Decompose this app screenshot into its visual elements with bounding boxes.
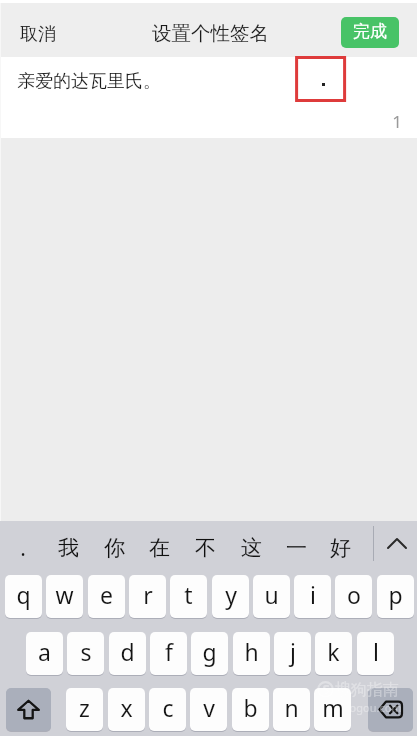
button[interactable]: b xyxy=(232,688,269,731)
staticText: 亲爱的达瓦里氏。 xyxy=(17,70,161,93)
button[interactable]: z xyxy=(66,688,103,731)
button[interactable]: 在 xyxy=(137,526,181,570)
staticText: p xyxy=(388,579,403,610)
button[interactable]: q xyxy=(5,575,42,618)
staticText: t xyxy=(184,579,193,610)
button[interactable]: f xyxy=(150,632,187,675)
staticText: z xyxy=(79,692,90,723)
staticText: i xyxy=(310,579,316,610)
button[interactable]: v xyxy=(190,688,227,731)
button[interactable]: 你 xyxy=(92,526,136,570)
staticText: a xyxy=(38,636,51,667)
staticText: 一 xyxy=(286,535,307,561)
staticText: 这 xyxy=(241,535,262,561)
button[interactable]: t xyxy=(170,575,207,618)
staticText: c xyxy=(162,692,174,723)
staticText: 你 xyxy=(104,535,125,561)
button[interactable]: g xyxy=(191,632,228,675)
button[interactable]: a xyxy=(26,632,63,675)
button[interactable]: 一 xyxy=(274,526,318,570)
staticText: sogou.com xyxy=(344,700,402,715)
staticText: v xyxy=(203,692,215,723)
staticText: n xyxy=(284,692,299,723)
button[interactable]: e xyxy=(88,575,125,618)
staticText: q xyxy=(16,579,31,610)
staticText: . xyxy=(20,534,26,563)
staticText: e xyxy=(100,579,113,610)
staticText: S xyxy=(322,680,330,697)
button[interactable]: 这 xyxy=(229,526,273,570)
button[interactable]: x xyxy=(108,688,145,731)
button[interactable]: Delete xyxy=(368,688,413,731)
button[interactable]: u xyxy=(253,575,290,618)
staticText: f xyxy=(165,636,173,667)
staticText: 我 xyxy=(58,535,79,561)
button[interactable]: Expand candidates xyxy=(375,521,417,569)
staticText: b xyxy=(243,692,258,723)
button[interactable]: y xyxy=(212,575,249,618)
button[interactable]: 完成 xyxy=(341,17,399,48)
button[interactable]: k xyxy=(315,632,352,675)
staticText: o xyxy=(347,579,361,610)
button[interactable]: Shift xyxy=(6,688,51,731)
button[interactable]: n xyxy=(273,688,310,731)
staticText: 设置个性签名 xyxy=(152,21,269,46)
button[interactable]: o xyxy=(335,575,372,618)
staticText: m xyxy=(322,692,344,723)
button[interactable]: 亲爱的达瓦里氏。 xyxy=(0,57,417,138)
button[interactable]: d xyxy=(109,632,146,675)
staticText: 不 xyxy=(195,535,216,561)
staticText: 完成 xyxy=(353,21,387,42)
staticText: d xyxy=(120,636,135,667)
button[interactable]: m xyxy=(314,688,351,731)
staticText: 取消 xyxy=(20,23,56,46)
staticText: 在 xyxy=(149,535,170,561)
button[interactable]: c xyxy=(149,688,186,731)
button[interactable]: r xyxy=(129,575,166,618)
staticText: 好 xyxy=(330,535,351,561)
staticText: x xyxy=(120,692,133,723)
staticText: k xyxy=(327,636,340,667)
staticText: g xyxy=(202,636,217,667)
button[interactable]: 好 xyxy=(318,526,362,570)
button[interactable]: i xyxy=(294,575,331,618)
button[interactable]: 取消 xyxy=(0,13,76,56)
staticText: j xyxy=(290,636,296,667)
staticText: y xyxy=(225,579,237,610)
button[interactable]: j xyxy=(274,632,311,675)
staticText: u xyxy=(264,579,279,610)
button[interactable]: . xyxy=(1,526,45,570)
button[interactable]: l xyxy=(357,632,394,675)
staticText: r xyxy=(143,579,153,610)
staticText: l xyxy=(373,636,379,667)
button[interactable]: 不 xyxy=(183,526,227,570)
staticText: h xyxy=(244,636,259,667)
staticText: 1 xyxy=(392,110,402,133)
staticText: s xyxy=(80,636,92,667)
button[interactable]: 我 xyxy=(46,526,90,570)
button[interactable]: h xyxy=(233,632,270,675)
staticText: 搜狗指南 xyxy=(335,680,399,700)
button[interactable]: w xyxy=(46,575,83,618)
staticText: w xyxy=(55,579,74,610)
button[interactable]: s xyxy=(67,632,104,675)
button[interactable]: p xyxy=(377,575,414,618)
